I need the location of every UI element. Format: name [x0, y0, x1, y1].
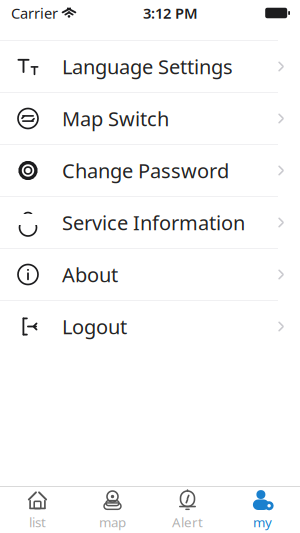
button[interactable]: Logout	[0, 301, 300, 352]
staticText: Alert	[172, 513, 203, 531]
staticText: Service Information	[62, 209, 245, 236]
button[interactable]: Service Information	[0, 197, 300, 249]
button[interactable]: my	[225, 487, 300, 533]
staticText: 3:12 PM	[143, 3, 198, 23]
staticText: Logout	[62, 313, 127, 340]
button[interactable]: list	[0, 487, 75, 533]
staticText: map	[99, 513, 126, 531]
staticText: list	[29, 513, 46, 531]
staticText: About	[62, 261, 118, 288]
button[interactable]: map	[75, 487, 150, 533]
staticText: my	[253, 513, 272, 531]
button[interactable]: Language Settings	[0, 41, 300, 93]
button[interactable]: About	[0, 249, 300, 301]
staticText: Language Settings	[62, 53, 233, 80]
staticText: Map Switch	[62, 105, 169, 132]
staticText: Carrier	[11, 3, 58, 23]
button[interactable]: Alert	[150, 487, 225, 533]
staticText: Change Password	[62, 157, 229, 184]
button[interactable]: Change Password	[0, 145, 300, 197]
button[interactable]: Map Switch	[0, 93, 300, 145]
